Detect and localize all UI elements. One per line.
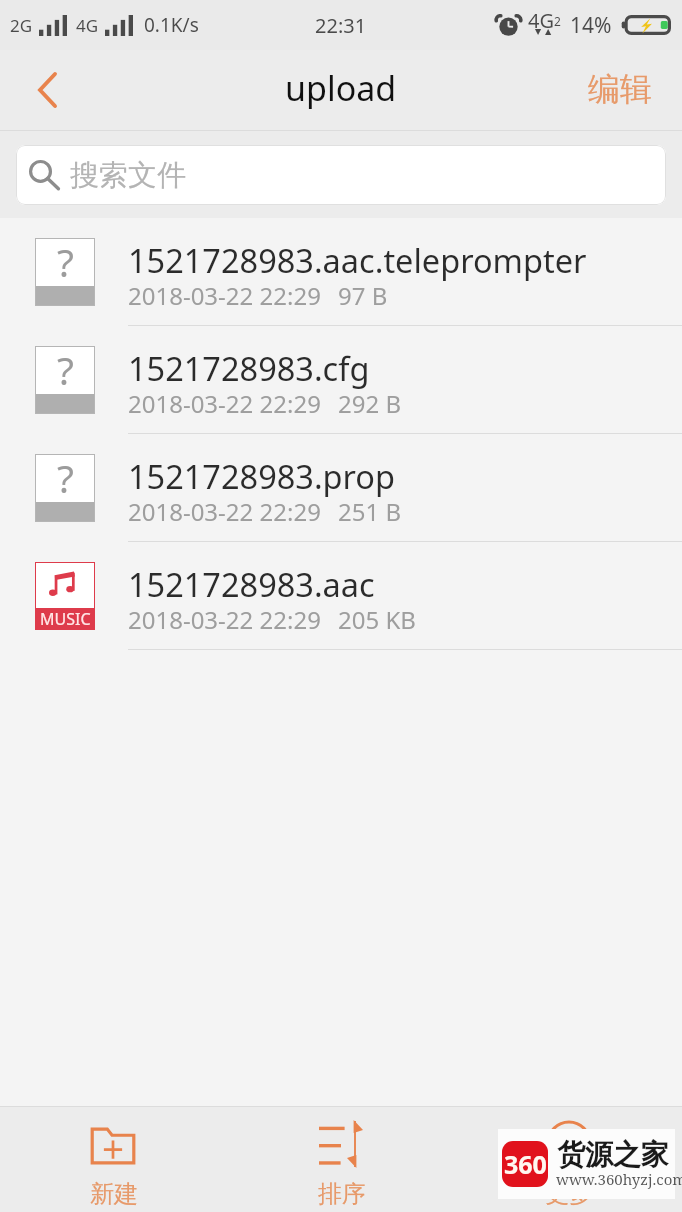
button[interactable]: ? — [0, 434, 682, 542]
button[interactable]: ? — [0, 326, 682, 434]
staticText: www.360hyzj.com — [556, 1169, 682, 1189]
button[interactable]: 编辑 — [564, 50, 682, 130]
button[interactable]: ? — [0, 218, 682, 326]
staticText: 搜索文件 — [70, 157, 186, 194]
staticText: 14% — [570, 11, 612, 40]
staticText: MUSIC — [40, 608, 91, 630]
staticText: 97 B — [338, 279, 388, 312]
staticText: 4G — [528, 7, 554, 34]
button[interactable]: Back — [0, 50, 92, 130]
staticText: 更多 — [545, 1179, 593, 1209]
staticText: 1521728983.aac.teleprompter — [128, 238, 587, 282]
staticText: 1521728983.aac — [128, 562, 375, 606]
button[interactable]: MUSIC — [0, 542, 682, 650]
staticText: 编辑 — [588, 69, 652, 109]
button[interactable]: Sort — [228, 1107, 455, 1212]
staticText: 排序 — [318, 1179, 366, 1209]
staticText: 2018-03-22 22:29 — [128, 387, 321, 420]
staticText: ? — [57, 343, 74, 396]
staticText: 1521728983.cfg — [128, 346, 370, 390]
staticText: 360 — [504, 1147, 547, 1181]
staticText: 4G — [76, 14, 99, 37]
staticText: 292 B — [338, 387, 402, 420]
staticText: 251 B — [338, 495, 402, 528]
staticText: 0.1K/s — [144, 12, 199, 38]
button[interactable]: 搜索文件 — [16, 145, 666, 205]
staticText: 22:31 — [315, 12, 367, 39]
button[interactable]: New folder — [0, 1107, 228, 1212]
staticText: ? — [57, 451, 74, 504]
staticText: 2018-03-22 22:29 — [128, 279, 321, 312]
staticText: upload — [285, 65, 397, 111]
staticText: 2018-03-22 22:29 — [128, 495, 321, 528]
staticText: 2018-03-22 22:29 — [128, 603, 321, 636]
staticText: 新建 — [90, 1179, 138, 1209]
staticText: 货源之家 — [557, 1137, 669, 1172]
staticText: 205 KB — [338, 603, 416, 636]
staticText: ? — [57, 235, 74, 288]
staticText: 1521728983.prop — [128, 454, 396, 498]
button[interactable]: More — [455, 1107, 682, 1212]
staticText: 2G — [10, 14, 33, 37]
staticText: 2 — [554, 13, 559, 29]
